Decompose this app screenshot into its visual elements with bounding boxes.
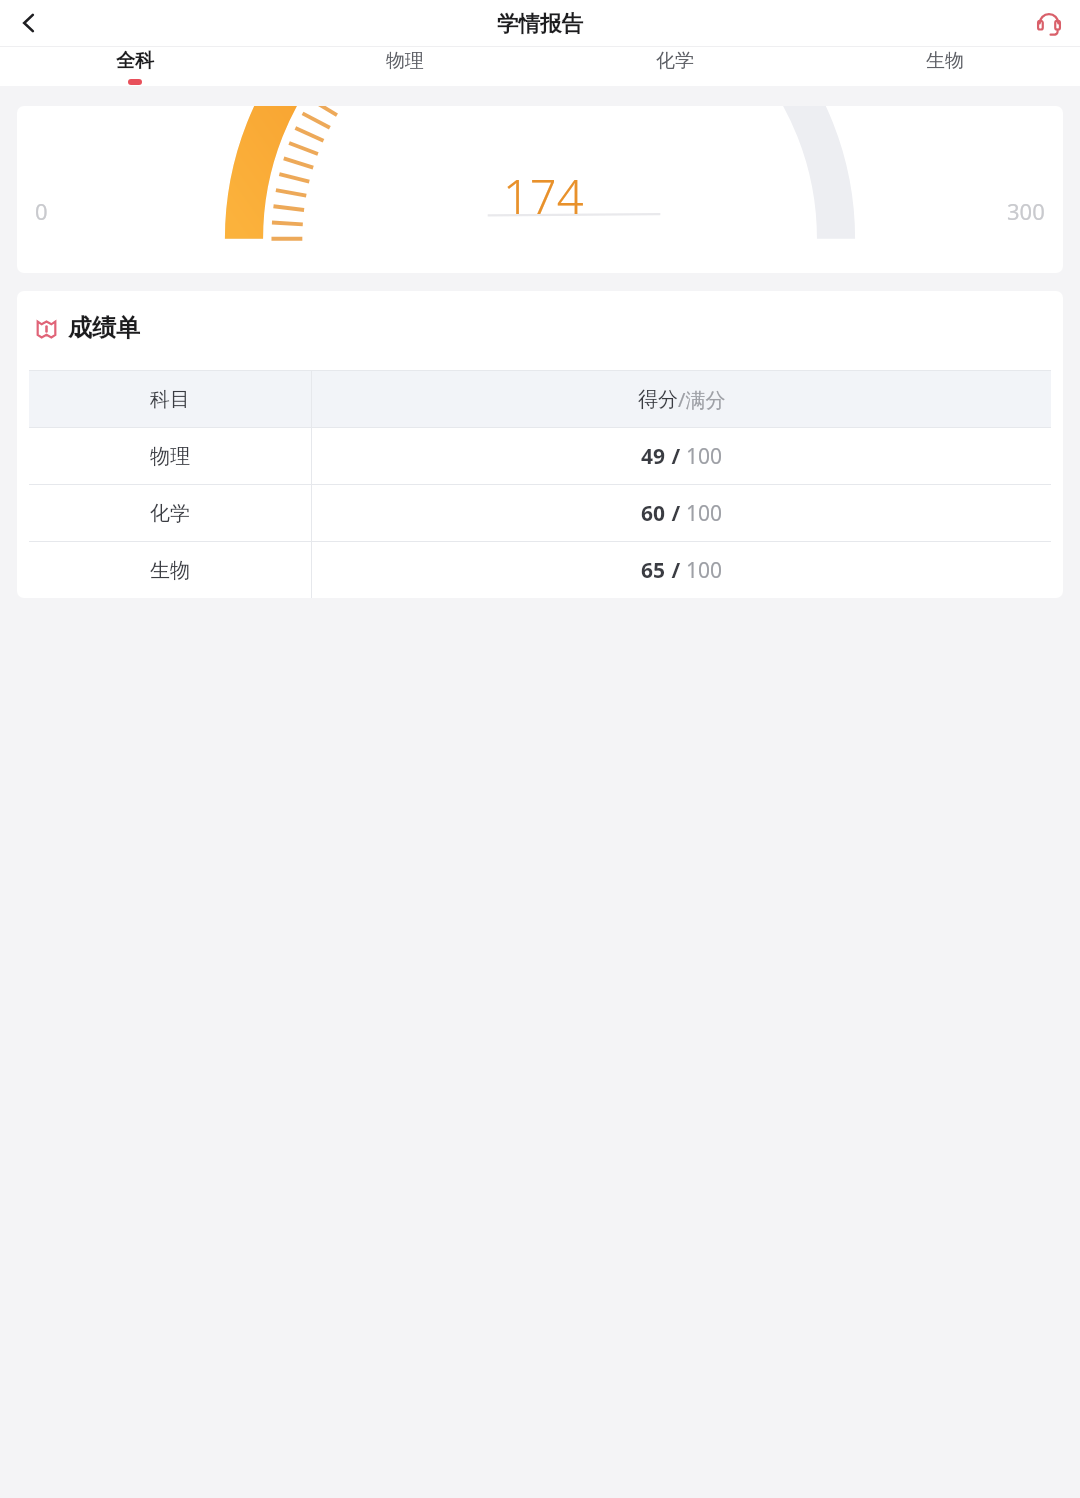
staticText: 100 — [686, 499, 723, 528]
button[interactable]: Customer service — [1028, 2, 1070, 44]
button[interactable]: 化学 — [29, 485, 1051, 541]
staticText: 学情报告 — [497, 10, 583, 37]
staticText: 65 — [641, 556, 666, 585]
button[interactable]: 物理 — [29, 428, 1051, 484]
button[interactable]: 生物 — [810, 47, 1080, 86]
staticText: 得分 — [638, 387, 678, 412]
staticText: 100 — [686, 442, 723, 471]
staticText: 科目 — [150, 387, 190, 412]
staticText: 物理 — [386, 49, 424, 73]
staticText: 100 — [686, 556, 723, 585]
staticText: /满分 — [678, 386, 726, 413]
staticText: 化学 — [150, 501, 190, 526]
staticText: 49 — [641, 442, 666, 471]
button[interactable]: 全科 — [0, 47, 270, 86]
button[interactable]: 生物 — [29, 542, 1051, 598]
staticText: / — [666, 442, 686, 471]
staticText: 物理 — [150, 444, 190, 469]
staticText: / — [666, 499, 686, 528]
staticText: 174 — [503, 164, 584, 228]
staticText: 化学 — [656, 49, 694, 73]
staticText: 成绩单 — [68, 313, 140, 343]
button[interactable]: 化学 — [540, 47, 810, 86]
button[interactable]: 物理 — [270, 47, 540, 86]
button[interactable]: Back — [8, 2, 50, 44]
staticText: / — [666, 556, 686, 585]
staticText: 生物 — [926, 49, 964, 73]
staticText: 全科 — [116, 49, 154, 73]
staticText: 300 — [1007, 196, 1045, 226]
staticText: 0 — [35, 196, 48, 226]
staticText: 生物 — [150, 558, 190, 583]
staticText: 60 — [641, 499, 666, 528]
